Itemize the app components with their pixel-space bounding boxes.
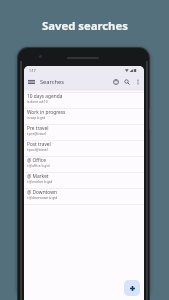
staticText: in:wip b:gtd: [27, 115, 46, 119]
staticText: Work in progress: [27, 109, 66, 116]
staticText: is:done ad:10: [27, 99, 48, 103]
staticText: Pre travel: [27, 125, 49, 132]
button[interactable]: Pre travel: [24, 125, 144, 140]
staticText: Post travel: [27, 141, 51, 148]
staticText: 10 days agenda: [27, 93, 63, 100]
staticText: Searches: [40, 78, 64, 86]
button[interactable]: @ Market: [24, 173, 144, 188]
button[interactable]: Search: [121, 76, 132, 87]
staticText: @ Downtown: [27, 189, 57, 196]
staticText: t:@office b:gtd: [27, 163, 50, 167]
staticText: Saved searches: [42, 18, 128, 33]
button[interactable]: @ Downtown: [24, 189, 144, 204]
button[interactable]: Navigation menu: [26, 76, 37, 87]
staticText: t:post@travel: [27, 147, 48, 151]
staticText: 1:17: [29, 68, 36, 73]
button[interactable]: 10 days agenda: [24, 93, 144, 108]
button[interactable]: More options: [132, 76, 143, 87]
staticText: t:pre@travel: [27, 131, 46, 135]
button[interactable]: Create saved search: [124, 280, 140, 296]
staticText: t:@market b:gtd: [27, 179, 53, 183]
button[interactable]: Post travel: [24, 141, 144, 156]
staticText: t:@downtown b:gtd: [27, 195, 58, 199]
staticText: @ Market: [27, 173, 49, 180]
staticText: @ Office: [27, 157, 46, 164]
button[interactable]: @ Office: [24, 157, 144, 172]
button[interactable]: Work in progress: [24, 109, 144, 124]
button[interactable]: Help: [110, 76, 121, 87]
